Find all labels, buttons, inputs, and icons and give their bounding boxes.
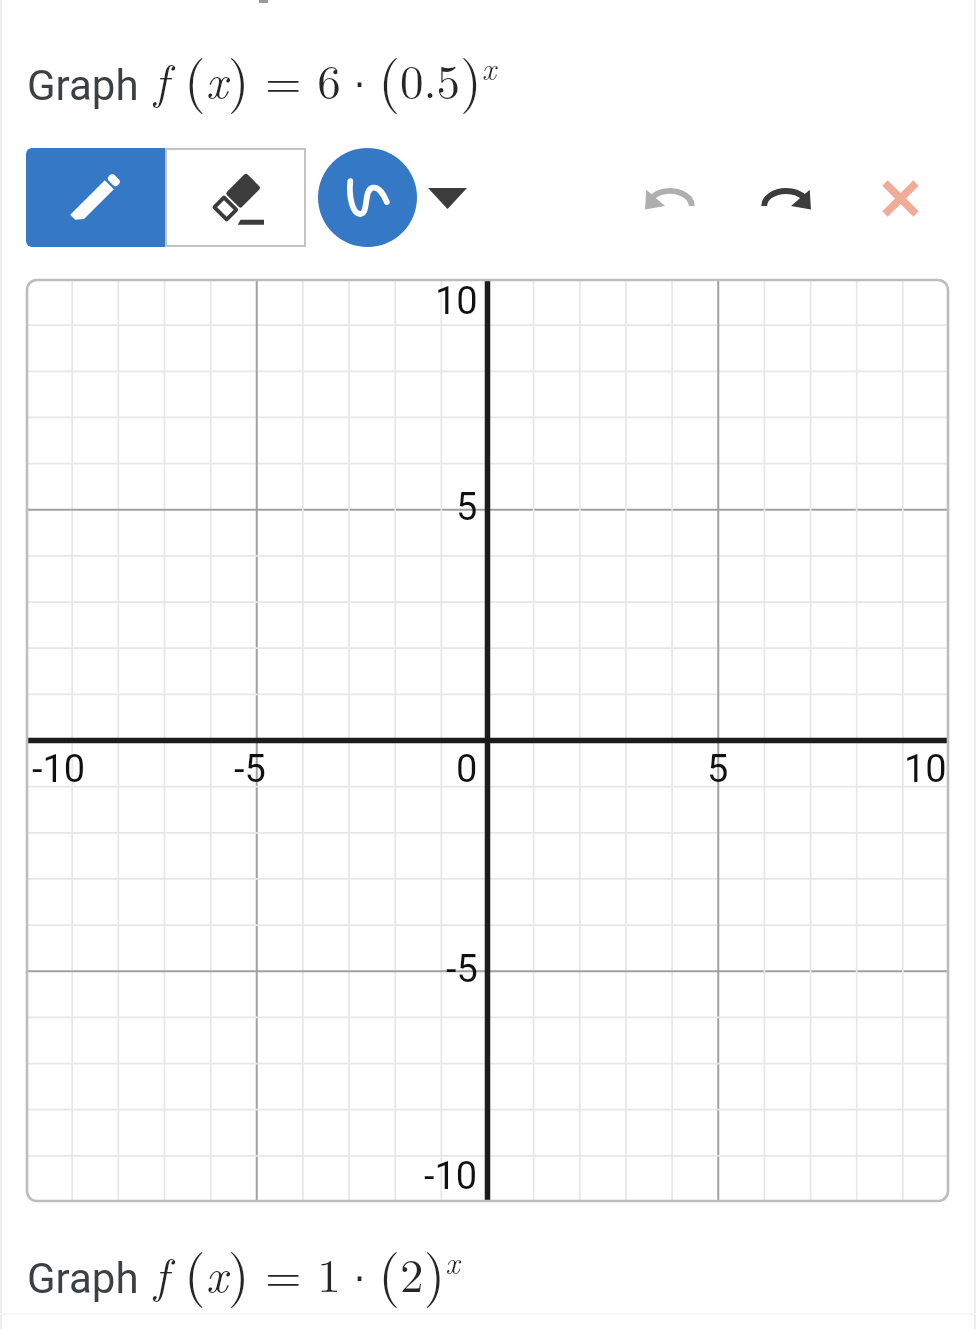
staticText: 0 [456, 747, 478, 792]
button[interactable]: Redo [746, 158, 826, 238]
button[interactable]: Eraser tool [165, 148, 306, 247]
staticText: Graph [27, 61, 139, 110]
staticText: 10 [435, 279, 478, 324]
button[interactable]: Stroke style [318, 148, 417, 247]
staticText: -5 [446, 947, 478, 992]
staticText: -5 [234, 747, 266, 792]
staticText: 5 [456, 485, 478, 530]
staticText: 10 [904, 747, 947, 792]
button[interactable]: Undo [630, 158, 710, 238]
button[interactable]: More stroke options [419, 167, 481, 229]
button[interactable]: Pen tool [26, 148, 165, 247]
staticText: -10 [424, 1154, 478, 1199]
staticText: Graph [27, 1254, 139, 1303]
staticText: -10 [32, 747, 86, 792]
button[interactable]: Clear drawing [860, 158, 940, 238]
staticText: f (x) = 6 ⋅ (0.5)x [154, 37, 497, 116]
staticText: 5 [707, 747, 729, 792]
staticText: f (x) = 1 ⋅ (2)x [154, 1231, 460, 1310]
